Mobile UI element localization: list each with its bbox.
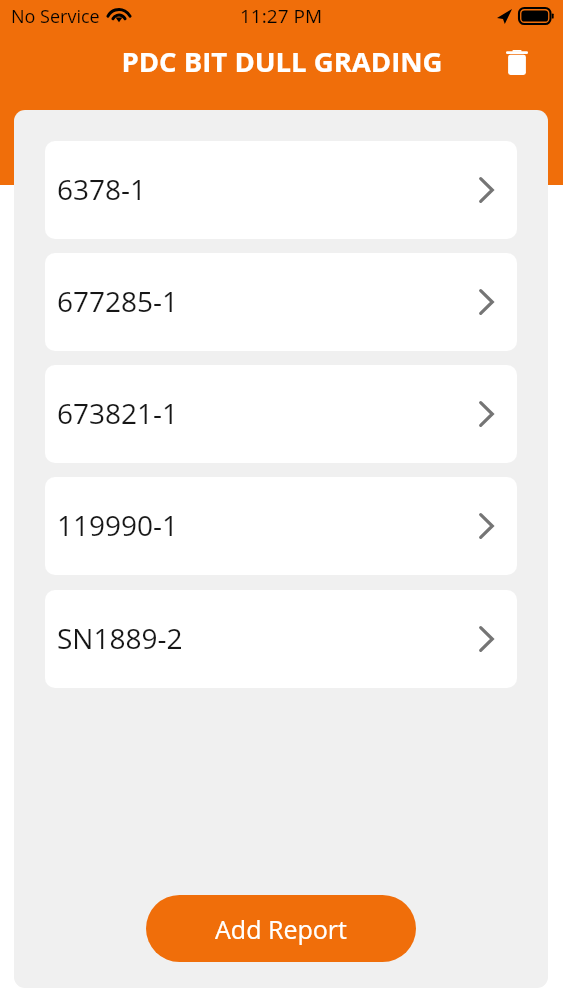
staticText: 6378-1 bbox=[57, 170, 147, 208]
staticText: 677285-1 bbox=[57, 282, 179, 320]
button[interactable]: SN1889-2 bbox=[45, 590, 517, 688]
staticText: SN1889-2 bbox=[57, 619, 183, 657]
staticText: PDC BIT DULL GRADING bbox=[121, 43, 443, 80]
staticText: No Service bbox=[11, 4, 100, 29]
button[interactable]: 677285-1 bbox=[45, 253, 517, 351]
staticText: 11:27 PM bbox=[240, 3, 323, 29]
staticText: 119990-1 bbox=[57, 506, 179, 544]
staticText: Add Report bbox=[215, 912, 347, 946]
button[interactable]: 119990-1 bbox=[45, 477, 517, 575]
button[interactable]: Delete bbox=[494, 39, 540, 85]
button[interactable]: 673821-1 bbox=[45, 365, 517, 463]
button[interactable]: Add Report bbox=[146, 895, 416, 962]
button[interactable]: 6378-1 bbox=[45, 141, 517, 239]
staticText: 673821-1 bbox=[57, 394, 179, 432]
